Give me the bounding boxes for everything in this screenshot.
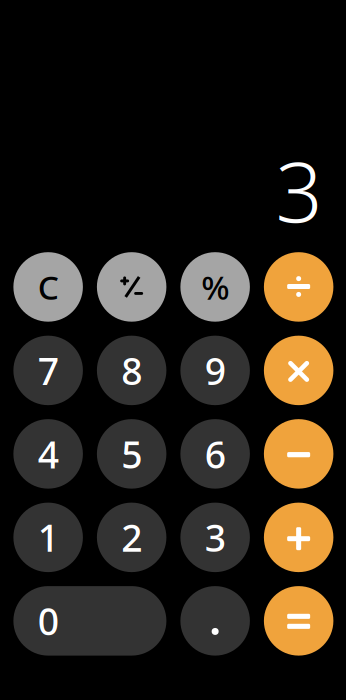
staticText: 6 [205,429,226,479]
staticText: 1 [38,513,59,562]
button[interactable]: 5 [97,419,166,489]
staticText: 7 [38,346,59,395]
button[interactable]: Divide [264,252,333,322]
staticText: 5 [121,429,142,479]
staticText: 0 [38,596,59,646]
staticText: 8 [121,346,142,395]
button[interactable]: 3 [180,503,250,572]
button[interactable]: 9 [180,336,250,405]
button[interactable]: Minus [264,419,333,489]
staticText: 9 [205,346,226,395]
button[interactable]: Plus minus [97,252,166,322]
staticText: % [201,265,229,309]
button[interactable]: Plus [264,503,333,572]
staticText: C [38,265,59,309]
staticText: 3 [205,513,226,562]
staticText: 3 [275,135,322,245]
button[interactable]: 8 [97,336,166,405]
button[interactable]: 0 [13,586,166,656]
button[interactable]: 1 [13,503,83,572]
button[interactable]: 6 [180,419,250,489]
button[interactable]: 4 [13,419,83,489]
button[interactable]: % [180,252,250,322]
button[interactable]: 2 [97,503,166,572]
staticText: 4 [38,429,59,479]
button[interactable]: 7 [13,336,83,405]
button[interactable]: Equals [264,586,333,656]
staticText: 2 [121,513,142,562]
button[interactable]: C [13,252,83,322]
button[interactable]: Decimal point [180,586,250,656]
button[interactable]: Multiply [264,336,333,405]
